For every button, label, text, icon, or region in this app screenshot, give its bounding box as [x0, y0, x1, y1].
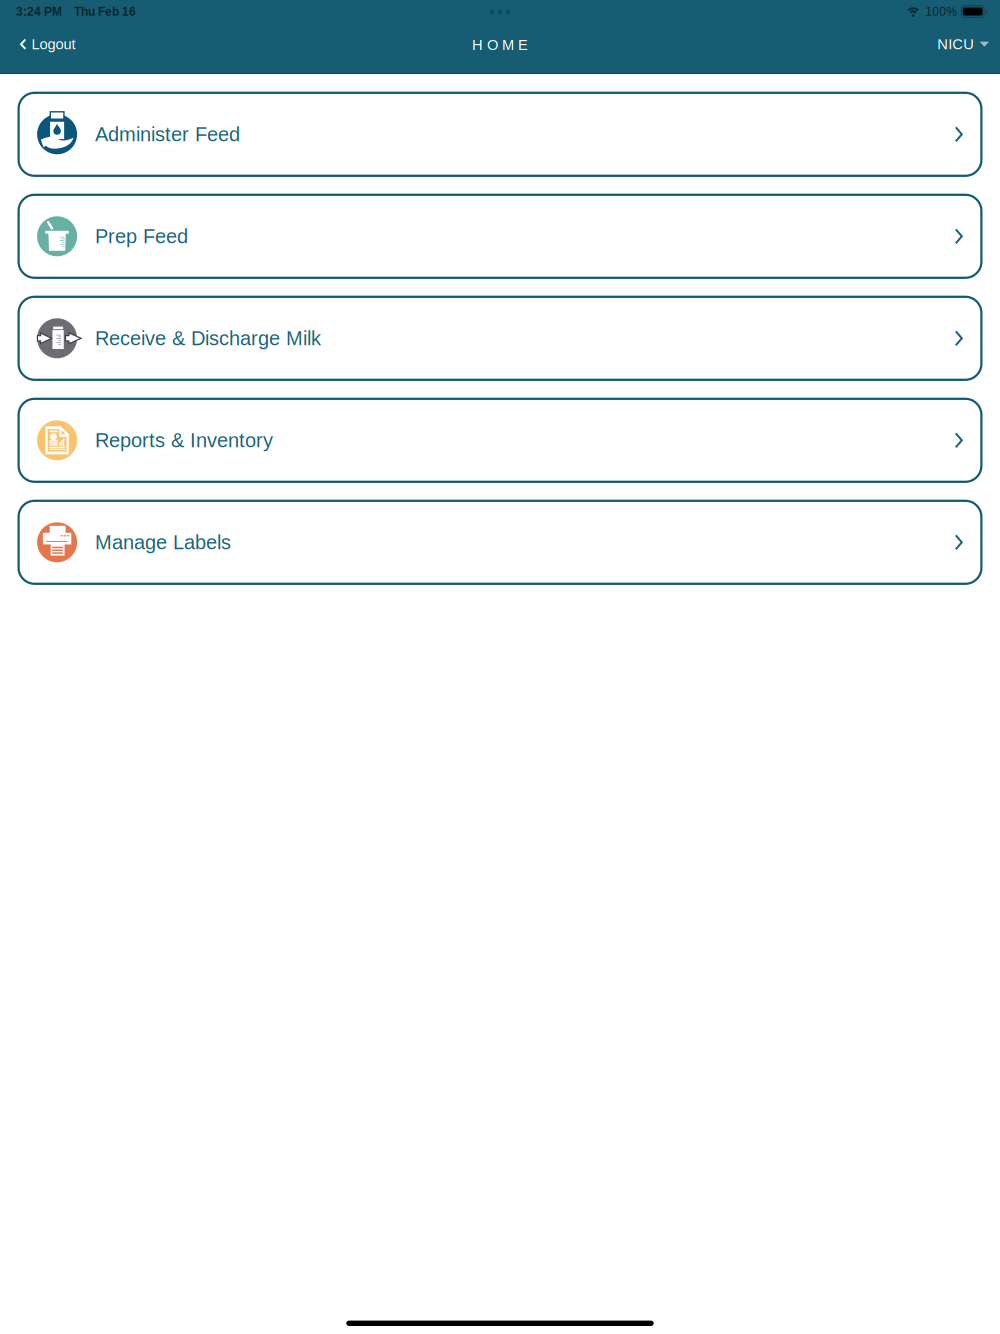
- button[interactable]: Manage Labels: [19, 501, 981, 584]
- button[interactable]: Receive & Discharge Milk: [19, 297, 981, 380]
- staticText: 100%: [925, 5, 957, 18]
- staticText: Administer Feed: [95, 123, 240, 145]
- button[interactable]: Logout: [0, 24, 89, 64]
- staticText: Reports & Inventory: [95, 429, 273, 451]
- staticText: Thu Feb 16: [74, 5, 136, 18]
- staticText: Prep Feed: [95, 225, 188, 247]
- staticText: H O M E: [472, 37, 528, 53]
- button[interactable]: NICU: [937, 24, 1000, 64]
- button[interactable]: Prep Feed: [19, 195, 981, 278]
- button[interactable]: Administer Feed: [19, 93, 981, 176]
- button[interactable]: Reports & Inventory: [19, 399, 981, 482]
- staticText: Receive & Discharge Milk: [95, 327, 321, 349]
- staticText: 3:24 PM: [16, 5, 62, 18]
- staticText: Manage Labels: [95, 531, 231, 553]
- staticText: NICU: [937, 36, 974, 52]
- staticText: Logout: [31, 36, 75, 52]
